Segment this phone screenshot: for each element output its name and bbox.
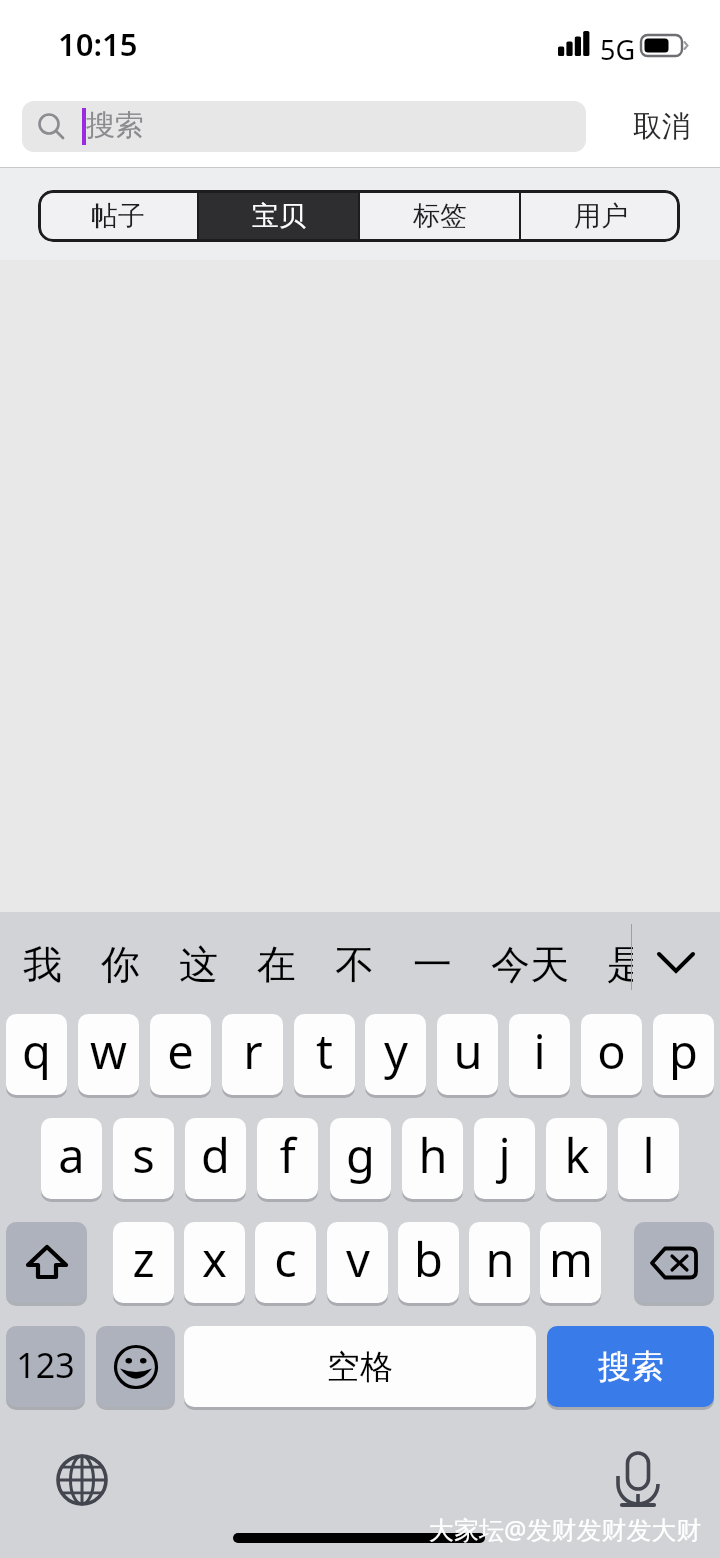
button[interactable]: l	[618, 1118, 679, 1199]
button[interactable]: 不	[335, 940, 374, 989]
staticText: 用户	[574, 199, 628, 233]
button[interactable]: g	[330, 1118, 391, 1199]
button[interactable]: z	[113, 1222, 174, 1303]
staticText: c	[274, 1227, 297, 1291]
button[interactable]: 取消	[625, 102, 699, 151]
button[interactable]: 搜索	[22, 101, 586, 152]
button[interactable]: 我	[23, 940, 62, 989]
staticText: e	[167, 1019, 194, 1083]
button[interactable]: 空格	[184, 1326, 536, 1407]
staticText: 10:15	[58, 23, 138, 65]
button[interactable]: o	[581, 1014, 642, 1095]
staticText: 帖子	[91, 199, 145, 233]
staticText: 我	[23, 940, 62, 989]
staticText: m	[549, 1227, 593, 1291]
staticText: 搜索	[598, 1346, 664, 1388]
button[interactable]: d	[185, 1118, 246, 1199]
staticText: 空格	[327, 1346, 393, 1388]
button[interactable]: f	[257, 1118, 318, 1199]
staticText: s	[132, 1123, 155, 1187]
staticText: h	[418, 1123, 448, 1187]
staticText: 取消	[633, 108, 691, 145]
button[interactable]: w	[78, 1014, 139, 1095]
button[interactable]: 用户	[521, 190, 680, 242]
button[interactable]: 帖子	[38, 190, 197, 242]
staticText: d	[201, 1123, 230, 1187]
staticText: 123	[16, 1342, 75, 1388]
button[interactable]: p	[653, 1014, 714, 1095]
staticText: w	[90, 1019, 127, 1083]
button[interactable]: i	[509, 1014, 570, 1095]
button[interactable]: Voice input	[612, 1450, 664, 1512]
button[interactable]: 搜索	[547, 1326, 714, 1407]
button[interactable]: h	[402, 1118, 463, 1199]
staticText: a	[58, 1123, 85, 1187]
staticText: 是	[607, 940, 633, 989]
button[interactable]: Change language	[56, 1454, 108, 1506]
button[interactable]: b	[398, 1222, 459, 1303]
staticText: b	[414, 1227, 443, 1291]
button[interactable]: r	[222, 1014, 283, 1095]
button[interactable]: 123	[6, 1326, 85, 1407]
staticText: t	[316, 1019, 333, 1083]
button[interactable]: 今天	[491, 940, 569, 989]
button[interactable]: a	[41, 1118, 102, 1199]
button[interactable]: u	[437, 1014, 498, 1095]
staticText: q	[22, 1019, 51, 1083]
staticText: 大家坛@发财发财发大财	[429, 1512, 702, 1546]
button[interactable]: Shift	[6, 1222, 87, 1303]
staticText: u	[453, 1019, 483, 1083]
staticText: 今天	[491, 940, 569, 989]
button[interactable]: y	[365, 1014, 426, 1095]
staticText: o	[597, 1019, 626, 1083]
staticText: 这	[179, 940, 218, 989]
staticText: z	[132, 1227, 155, 1291]
button[interactable]: Emoji	[96, 1326, 175, 1407]
button[interactable]: 一	[413, 940, 452, 989]
staticText: p	[669, 1019, 698, 1083]
staticText: n	[485, 1227, 515, 1291]
staticText: y	[384, 1019, 408, 1083]
staticText: x	[202, 1227, 227, 1291]
staticText: 搜索	[86, 107, 144, 144]
staticText: 5G	[600, 31, 636, 68]
staticText: 在	[257, 940, 296, 989]
button[interactable]: s	[113, 1118, 174, 1199]
button[interactable]: Delete	[634, 1222, 714, 1303]
button[interactable]: 在	[257, 940, 296, 989]
button[interactable]: Expand candidates	[650, 936, 702, 988]
staticText: 标签	[413, 199, 467, 233]
button[interactable]: e	[150, 1014, 211, 1095]
button[interactable]: x	[184, 1222, 245, 1303]
staticText: g	[346, 1123, 375, 1187]
staticText: v	[346, 1227, 370, 1291]
staticText: i	[533, 1019, 546, 1083]
staticText: f	[279, 1123, 296, 1187]
button[interactable]: k	[546, 1118, 607, 1199]
button[interactable]: c	[255, 1222, 316, 1303]
staticText: j	[498, 1123, 511, 1187]
button[interactable]: 是	[607, 940, 633, 1000]
staticText: 不	[335, 940, 374, 989]
staticText: l	[642, 1123, 655, 1187]
staticText: r	[243, 1019, 263, 1083]
button[interactable]: 这	[179, 940, 218, 989]
button[interactable]: 标签	[360, 190, 519, 242]
button[interactable]: m	[540, 1222, 601, 1303]
button[interactable]: n	[469, 1222, 530, 1303]
button[interactable]: t	[294, 1014, 355, 1095]
staticText: k	[564, 1123, 590, 1187]
button[interactable]: q	[6, 1014, 67, 1095]
button[interactable]: 宝贝	[199, 190, 358, 242]
staticText: 你	[101, 940, 140, 989]
button[interactable]: v	[327, 1222, 388, 1303]
staticText: 一	[413, 940, 452, 989]
button[interactable]: j	[474, 1118, 535, 1199]
staticText: 宝贝	[252, 199, 306, 233]
button[interactable]: 你	[101, 940, 140, 989]
